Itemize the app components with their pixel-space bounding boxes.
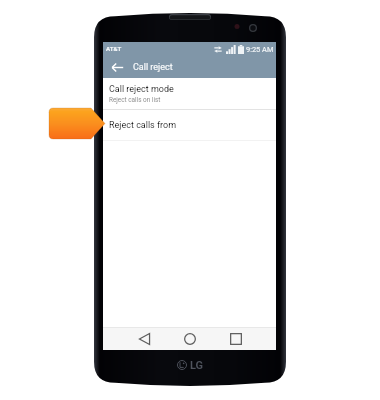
staticText: 9:25 AM	[246, 45, 274, 54]
button[interactable]: Recent apps	[213, 328, 259, 350]
button[interactable]: Call reject mode	[103, 78, 276, 109]
button[interactable]: Back	[108, 56, 126, 78]
button[interactable]: Back	[103, 56, 276, 78]
staticText: Reject calls on list	[109, 96, 161, 104]
staticText: Call reject mode	[109, 84, 174, 95]
staticText: AT&T	[106, 45, 122, 52]
staticText: Reject calls from	[109, 120, 177, 131]
staticText: LG	[190, 359, 204, 372]
staticText: Call reject	[133, 62, 173, 73]
button[interactable]: Home	[167, 328, 213, 350]
button[interactable]: Back	[121, 328, 167, 350]
button[interactable]: Reject calls from	[103, 110, 276, 140]
